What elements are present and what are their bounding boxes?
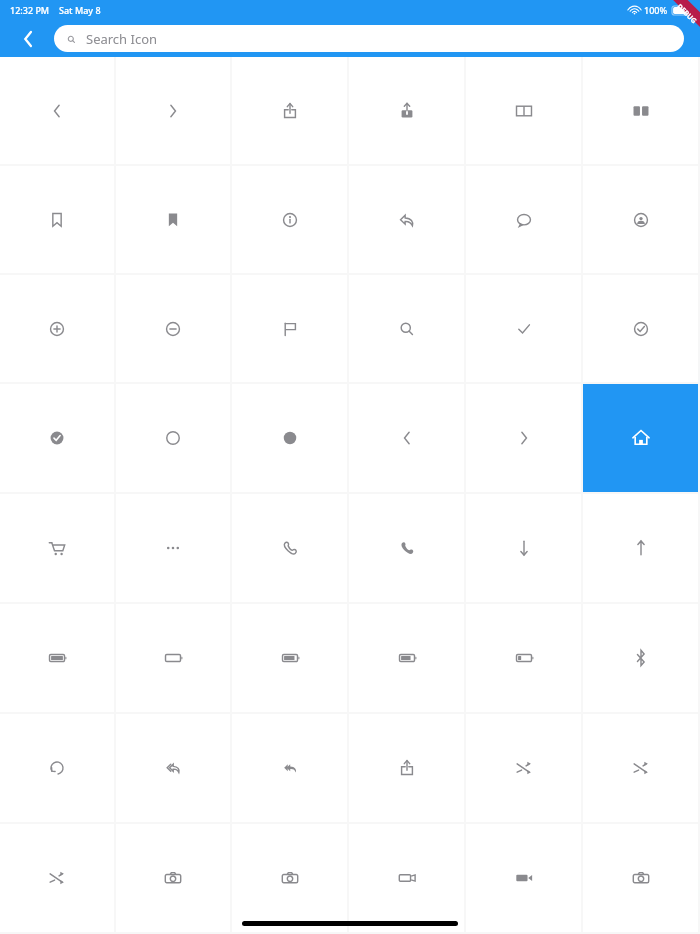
button[interactable]: cart xyxy=(0,494,114,602)
button[interactable]: search xyxy=(349,275,464,382)
button[interactable]: bookF xyxy=(583,57,698,164)
staticText: 100% xyxy=(644,4,668,16)
button[interactable]: video xyxy=(349,824,464,932)
button[interactable]: bat90 xyxy=(232,604,347,712)
staticText: Sat May 8 xyxy=(59,4,101,16)
button[interactable]: shareO xyxy=(349,714,464,822)
button[interactable]: replyAllO xyxy=(116,714,230,822)
button[interactable]: circO xyxy=(116,384,230,492)
button[interactable]: bt xyxy=(583,604,698,712)
button[interactable]: shuffle xyxy=(0,824,114,932)
button[interactable]: phoneF xyxy=(349,494,464,602)
button[interactable]: chevL xyxy=(349,384,464,492)
button[interactable]: videoF xyxy=(466,824,581,932)
button[interactable]: shareF xyxy=(349,57,464,164)
button[interactable]: bmO xyxy=(0,166,114,273)
button[interactable]: shuffle xyxy=(583,714,698,822)
staticText: DEBUG xyxy=(674,2,699,26)
button[interactable]: arrU xyxy=(583,494,698,602)
button[interactable]: bat80 xyxy=(349,604,464,712)
staticText: 12:32 PM xyxy=(10,4,50,16)
button[interactable]: chevR xyxy=(116,57,230,164)
button[interactable]: bookO xyxy=(466,57,581,164)
button[interactable]: shuffle xyxy=(466,714,581,822)
button[interactable]: checkC xyxy=(583,275,698,382)
button[interactable]: Search Icon xyxy=(54,25,684,52)
button[interactable]: info xyxy=(232,166,347,273)
button[interactable]: check xyxy=(466,275,581,382)
button[interactable]: shareO xyxy=(232,57,347,164)
button[interactable]: Back xyxy=(0,20,54,57)
button[interactable]: cameraR xyxy=(583,824,698,932)
button[interactable]: bmF xyxy=(116,166,230,273)
button[interactable]: chevR xyxy=(466,384,581,492)
button[interactable]: home xyxy=(583,384,698,492)
button[interactable]: circF xyxy=(232,384,347,492)
button[interactable]: chat xyxy=(466,166,581,273)
button[interactable]: camera xyxy=(116,824,230,932)
button[interactable]: reply xyxy=(349,166,464,273)
button[interactable]: bat100 xyxy=(0,604,114,712)
button[interactable]: replyAllF xyxy=(232,714,347,822)
staticText: Search Icon xyxy=(86,30,158,48)
button[interactable]: chevL xyxy=(0,57,114,164)
button[interactable]: arrD xyxy=(466,494,581,602)
button[interactable]: flag xyxy=(232,275,347,382)
button[interactable]: plusC xyxy=(0,275,114,382)
button[interactable]: phoneO xyxy=(232,494,347,602)
button[interactable]: refresh xyxy=(0,714,114,822)
button[interactable]: camera xyxy=(232,824,347,932)
button[interactable]: minusC xyxy=(116,275,230,382)
button[interactable]: dots xyxy=(116,494,230,602)
button[interactable]: bat0 xyxy=(116,604,230,712)
button[interactable]: bat25 xyxy=(466,604,581,712)
button[interactable]: person xyxy=(583,166,698,273)
button[interactable]: checkCF xyxy=(0,384,114,492)
